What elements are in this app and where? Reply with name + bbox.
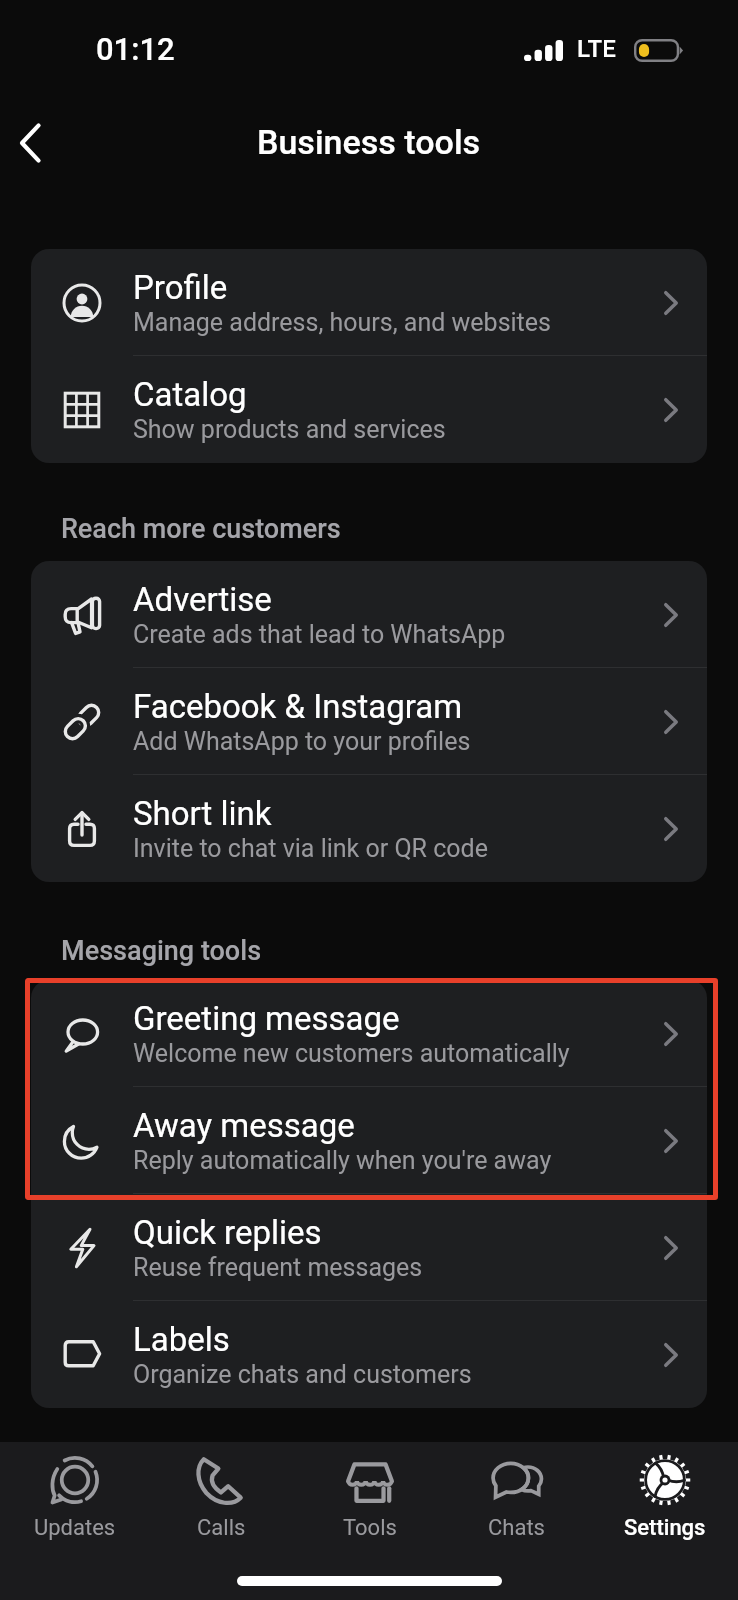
- staticText: Catalog: [133, 375, 247, 414]
- button[interactable]: Away message: [31, 1087, 707, 1194]
- staticText: Short link: [133, 794, 272, 833]
- staticText: Quick replies: [133, 1213, 322, 1252]
- staticText: Settings: [624, 1515, 706, 1541]
- staticText: Profile: [133, 268, 228, 307]
- staticText: Labels: [133, 1320, 230, 1359]
- button[interactable]: Tools: [296, 1442, 443, 1541]
- button[interactable]: Facebook & Instagram: [31, 668, 707, 775]
- staticText: Tools: [343, 1515, 397, 1541]
- staticText: Reach more customers: [61, 513, 341, 545]
- button[interactable]: Settings: [591, 1442, 738, 1541]
- staticText: Reply automatically when you're away: [133, 1146, 552, 1175]
- button[interactable]: Quick replies: [31, 1194, 707, 1301]
- staticText: Away message: [133, 1106, 355, 1145]
- staticText: Create ads that lead to WhatsApp: [133, 620, 506, 649]
- button[interactable]: Short link: [31, 775, 707, 882]
- button[interactable]: Greeting message: [31, 980, 707, 1087]
- staticText: Invite to chat via link or QR code: [133, 834, 488, 863]
- staticText: Updates: [34, 1515, 116, 1541]
- staticText: Manage address, hours, and websites: [133, 308, 551, 337]
- button[interactable]: Labels: [31, 1301, 707, 1408]
- button[interactable]: Advertise: [31, 561, 707, 668]
- staticText: LTE: [577, 35, 616, 63]
- staticText: Facebook & Instagram: [133, 687, 463, 726]
- staticText: Reuse frequent messages: [133, 1253, 423, 1282]
- staticText: Calls: [197, 1515, 246, 1541]
- staticText: Show products and services: [133, 415, 446, 444]
- button[interactable]: Calls: [148, 1442, 295, 1541]
- staticText: Organize chats and customers: [133, 1360, 472, 1389]
- staticText: 01:12: [96, 31, 175, 67]
- button[interactable]: Profile: [31, 249, 707, 356]
- staticText: Messaging tools: [61, 935, 262, 967]
- button[interactable]: Catalog: [31, 356, 707, 463]
- staticText: Welcome new customers automatically: [133, 1039, 570, 1068]
- staticText: Chats: [488, 1515, 545, 1541]
- button[interactable]: Chats: [443, 1442, 590, 1541]
- button[interactable]: Updates: [1, 1442, 148, 1541]
- staticText: Greeting message: [133, 999, 400, 1038]
- staticText: Add WhatsApp to your profiles: [133, 727, 471, 756]
- staticText: Advertise: [133, 580, 272, 619]
- staticText: Business tools: [257, 122, 481, 162]
- button[interactable]: Back: [2, 115, 58, 171]
